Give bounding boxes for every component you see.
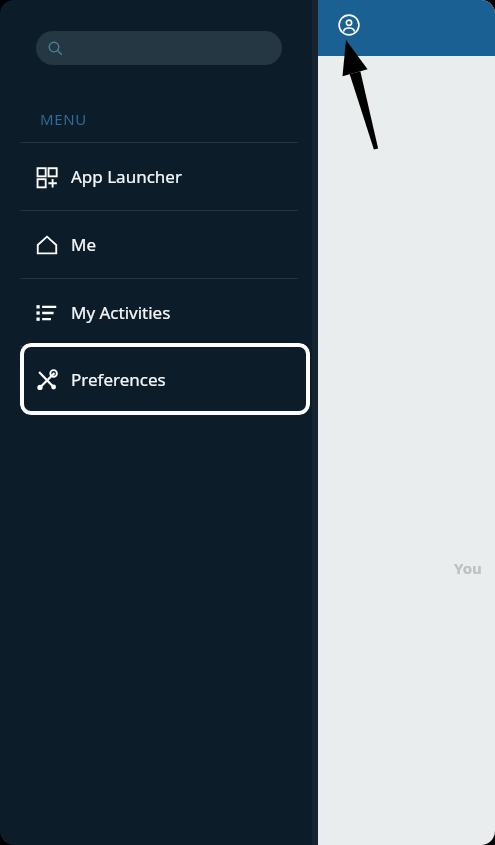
button[interactable]: Search — [36, 31, 282, 65]
staticText: Me — [71, 233, 97, 256]
staticText: Preferences — [71, 368, 166, 391]
staticText: App Launcher — [71, 165, 182, 188]
staticText: MENU — [40, 109, 87, 129]
staticText: You have no items — [454, 558, 495, 578]
button[interactable]: My Activities — [0, 279, 318, 346]
button[interactable]: Me — [0, 211, 318, 278]
staticText: My Activities — [71, 301, 171, 324]
button[interactable]: App Launcher — [0, 143, 318, 210]
button[interactable]: Preferences — [20, 343, 310, 415]
button[interactable]: Account — [338, 14, 360, 36]
